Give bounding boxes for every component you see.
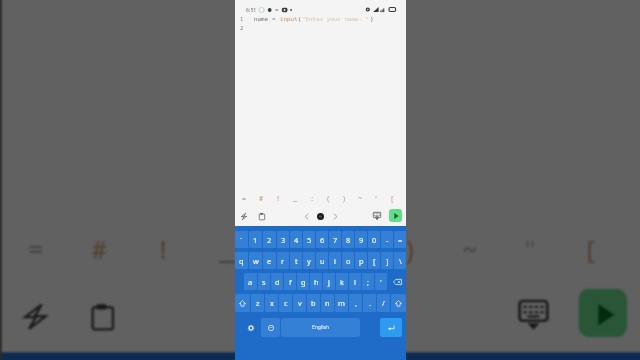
button[interactable]: [	[560, 217, 620, 277]
button[interactable]: /	[377, 294, 390, 312]
button[interactable]: )	[336, 190, 352, 206]
button[interactable]: (	[320, 190, 336, 206]
button[interactable]: e	[263, 252, 276, 269]
button[interactable]: 4	[290, 231, 302, 248]
staticText: s	[262, 277, 266, 287]
button[interactable]: Hide keyboard	[511, 277, 556, 352]
button[interactable]: 7	[329, 231, 341, 248]
button[interactable]: q	[235, 252, 248, 269]
button[interactable]: f	[284, 273, 296, 290]
button[interactable]: )	[380, 217, 440, 277]
button[interactable]: h	[310, 273, 322, 290]
button[interactable]: w	[249, 252, 262, 269]
button[interactable]: ;	[362, 273, 374, 290]
button[interactable]: x	[265, 294, 278, 312]
button[interactable]: 8	[342, 231, 354, 248]
button[interactable]: `	[235, 231, 248, 248]
button[interactable]: Shift	[235, 294, 250, 312]
button[interactable]: y	[303, 252, 315, 269]
button[interactable]: l	[349, 273, 361, 290]
button[interactable]: p	[355, 252, 367, 269]
button[interactable]: d	[271, 273, 283, 290]
button[interactable]: Quick actions	[13, 277, 58, 352]
button[interactable]: Move cursor right	[330, 206, 340, 226]
staticText: c	[284, 298, 288, 308]
button[interactable]: [	[384, 190, 400, 206]
button[interactable]: '	[375, 273, 387, 290]
staticText: k	[340, 277, 344, 287]
button[interactable]: r	[277, 252, 289, 269]
button[interactable]: !	[270, 190, 287, 206]
button[interactable]: =	[236, 190, 253, 206]
button[interactable]: v	[293, 294, 306, 312]
button[interactable]: Emoji	[261, 318, 280, 337]
button[interactable]: i	[329, 252, 341, 269]
button[interactable]: ~	[352, 190, 368, 206]
button[interactable]: -	[381, 231, 393, 248]
button[interactable]: Move cursor left	[301, 206, 311, 226]
button[interactable]: o	[342, 252, 354, 269]
button[interactable]: Hide keyboard	[371, 206, 383, 226]
button[interactable]: 1	[249, 231, 262, 248]
staticText: English	[312, 324, 330, 331]
button[interactable]: .	[363, 294, 376, 312]
button[interactable]: k	[336, 273, 348, 290]
button[interactable]: \	[394, 252, 406, 269]
button[interactable]: b	[307, 294, 320, 312]
button[interactable]: 0	[368, 231, 380, 248]
button[interactable]: [	[368, 252, 380, 269]
button[interactable]: s	[258, 273, 270, 290]
button[interactable]: Run	[389, 209, 402, 222]
button[interactable]: Backspace	[388, 273, 406, 290]
staticText: 6:51	[246, 6, 257, 13]
button[interactable]: =	[394, 231, 406, 248]
button[interactable]: #	[69, 217, 133, 277]
button[interactable]: _	[287, 190, 304, 206]
button[interactable]: Run	[578, 289, 627, 337]
staticText: ~	[462, 232, 481, 266]
button[interactable]: _	[196, 217, 260, 277]
button[interactable]: z	[251, 294, 264, 312]
button[interactable]: m	[335, 294, 348, 312]
staticText: )	[402, 232, 421, 266]
button[interactable]: n	[321, 294, 334, 312]
button[interactable]: 2	[263, 231, 276, 248]
staticText: 3	[281, 235, 286, 245]
staticText: :	[283, 232, 301, 266]
button[interactable]: a	[244, 273, 257, 290]
button[interactable]: g	[297, 273, 309, 290]
button[interactable]: Clipboard	[80, 277, 125, 352]
button[interactable]: Cursor control	[317, 213, 324, 220]
button[interactable]: Move cursor right	[357, 277, 395, 352]
button[interactable]: !	[133, 217, 196, 277]
button[interactable]: j	[323, 273, 335, 290]
button[interactable]: 9	[355, 231, 367, 248]
button[interactable]: Quick actions	[238, 206, 250, 226]
button[interactable]: ]	[381, 252, 393, 269]
button[interactable]: ,	[349, 294, 362, 312]
button[interactable]: Shift	[391, 294, 406, 312]
button[interactable]: 5	[303, 231, 315, 248]
button[interactable]: "	[368, 190, 384, 206]
button[interactable]: English	[281, 318, 360, 337]
button[interactable]: Enter	[380, 318, 402, 337]
staticText: 2	[267, 235, 272, 245]
button[interactable]: :	[304, 190, 320, 206]
button[interactable]: 3	[277, 231, 289, 248]
staticText: !	[276, 194, 281, 203]
button[interactable]: Clipboard	[256, 206, 268, 226]
button[interactable]: Keyboard settings	[240, 318, 261, 337]
button[interactable]: :	[260, 217, 320, 277]
button[interactable]: c	[279, 294, 292, 312]
button[interactable]: 6	[316, 231, 328, 248]
button[interactable]: t	[290, 252, 302, 269]
button[interactable]: (	[320, 217, 380, 277]
button[interactable]: #	[253, 190, 270, 206]
staticText: e	[267, 256, 272, 266]
button[interactable]: Cursor control	[309, 304, 335, 330]
button[interactable]: Move cursor left	[249, 277, 286, 352]
button[interactable]: u	[316, 252, 328, 269]
